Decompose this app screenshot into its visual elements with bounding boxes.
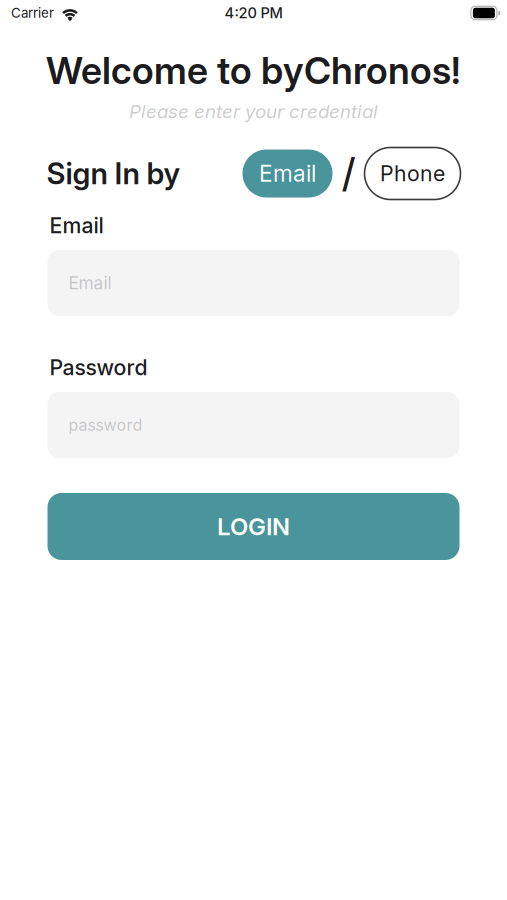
staticText: Email: [49, 213, 103, 238]
button[interactable]: password: [47, 392, 459, 458]
staticText: Please enter your credential: [129, 100, 378, 123]
button[interactable]: Phone: [364, 147, 460, 199]
staticText: LOGIN: [217, 512, 290, 541]
staticText: password: [68, 415, 142, 435]
button[interactable]: Email: [47, 250, 459, 316]
staticText: Sign In by: [46, 156, 180, 191]
button[interactable]: Email: [242, 149, 332, 197]
staticText: Phone: [380, 161, 445, 186]
staticText: Email: [259, 160, 316, 187]
staticText: Email: [68, 272, 111, 293]
button[interactable]: LOGIN: [47, 493, 459, 560]
staticText: /: [342, 150, 355, 197]
staticText: Welcome to byChronos!: [46, 48, 461, 93]
staticText: 4:20 PM: [224, 4, 282, 22]
staticText: Carrier: [11, 5, 54, 21]
staticText: Password: [49, 355, 147, 380]
